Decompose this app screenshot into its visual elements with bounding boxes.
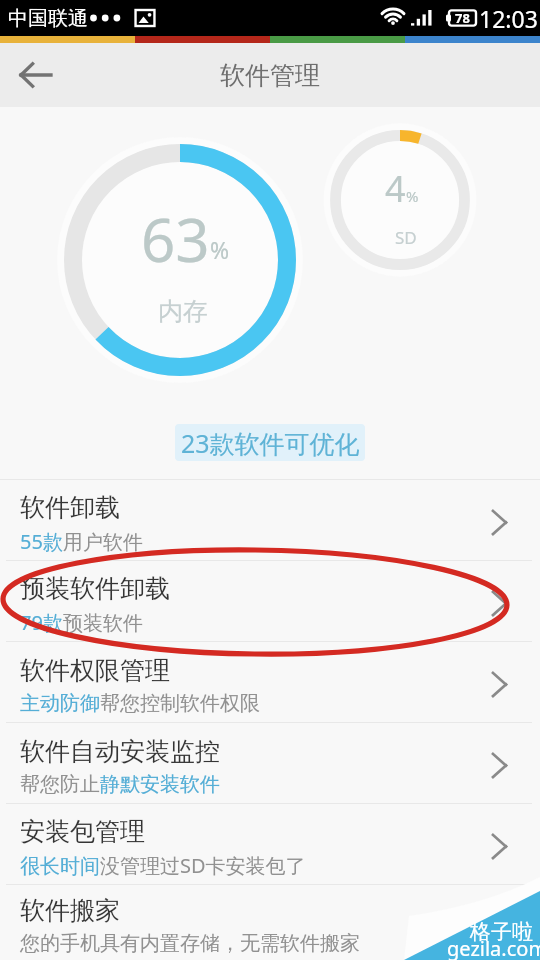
staticText: %: [406, 186, 419, 206]
staticText: 4: [385, 164, 406, 213]
staticText: 格子啦: [470, 919, 533, 945]
button[interactable]: Back: [12, 51, 60, 99]
button[interactable]: 软件权限管理: [0, 642, 540, 722]
staticText: 软件管理: [220, 60, 320, 91]
button[interactable]: 23款软件可优化: [175, 424, 365, 461]
staticText: 帮您防止静默安装软件: [20, 772, 220, 797]
staticText: 安装包管理: [20, 816, 145, 847]
staticText: gezila.com: [447, 935, 540, 960]
button[interactable]: 软件自动安装监控: [0, 723, 540, 803]
staticText: 软件卸载: [20, 492, 120, 523]
staticText: 78: [455, 9, 470, 27]
staticText: 很长时间没管理过SD卡安装包了: [20, 852, 306, 879]
staticText: 23款软件可优化: [181, 426, 360, 460]
button[interactable]: 软件卸载: [0, 480, 540, 560]
button[interactable]: 软件搬家: [0, 885, 540, 960]
staticText: 79款预装软件: [20, 609, 143, 636]
staticText: 预装软件卸载: [20, 573, 170, 604]
staticText: 主动防御帮您控制软件权限: [20, 691, 260, 716]
staticText: 软件搬家: [20, 895, 120, 926]
button[interactable]: 安装包管理: [0, 804, 540, 884]
staticText: %: [210, 234, 230, 265]
staticText: 63: [141, 198, 210, 280]
staticText: 您的手机具有内置存储，无需软件搬家: [20, 931, 360, 956]
staticText: 12:03: [479, 3, 538, 34]
staticText: 55款用户软件: [20, 528, 143, 555]
staticText: SD: [395, 226, 417, 249]
staticText: 中国联通: [8, 6, 88, 31]
button[interactable]: 预装软件卸载: [0, 561, 540, 641]
staticText: 软件自动安装监控: [20, 736, 220, 767]
staticText: 内存: [158, 296, 208, 327]
staticText: 软件权限管理: [20, 655, 170, 686]
